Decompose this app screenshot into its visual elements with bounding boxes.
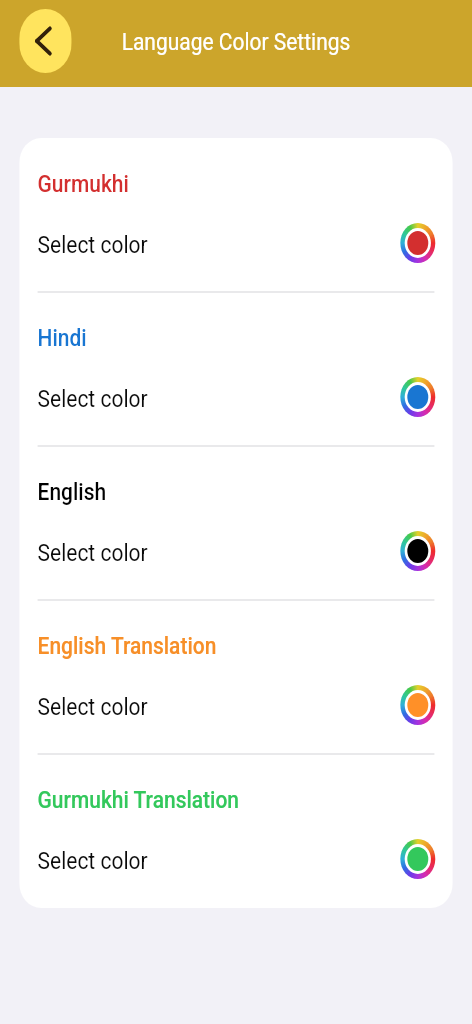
button[interactable]: Select color for Gurmukhi [400, 223, 435, 263]
staticText: Gurmukhi Translation [38, 786, 239, 814]
staticText: Hindi [38, 324, 87, 352]
button[interactable]: Select color [19, 368, 453, 430]
staticText: English [38, 478, 107, 506]
button[interactable]: Select color for English [400, 531, 435, 571]
button[interactable]: Select color [19, 214, 453, 276]
staticText: Select color [38, 847, 148, 875]
staticText: Gurmukhi [38, 170, 129, 198]
button[interactable]: Select color [19, 522, 453, 584]
button[interactable]: Select color for English Translation [400, 685, 435, 725]
button[interactable]: Back [19, 9, 72, 73]
staticText: Select color [38, 539, 148, 567]
button[interactable]: Select color [19, 676, 453, 738]
staticText: English Translation [38, 632, 217, 660]
button[interactable]: Select color for Gurmukhi Translation [400, 839, 435, 879]
staticText: Select color [38, 693, 148, 721]
staticText: Select color [38, 231, 148, 259]
button[interactable]: Select color [19, 830, 453, 892]
staticText: Select color [38, 385, 148, 413]
button[interactable]: Select color for Hindi [400, 377, 435, 417]
staticText: Language Color Settings [121, 28, 350, 56]
